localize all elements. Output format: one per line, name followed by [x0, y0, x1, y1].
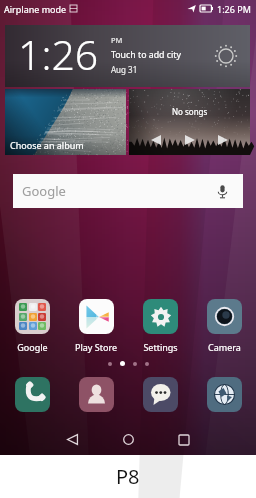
- button[interactable]: Settings: [128, 299, 192, 353]
- button[interactable]: Choose an album: [5, 89, 126, 155]
- staticText: P8: [116, 463, 140, 490]
- button[interactable]: Phone: [15, 377, 50, 412]
- button[interactable]: No songs: [129, 89, 250, 155]
- staticText: 1:26 PM: [217, 3, 251, 15]
- button[interactable]: Messages: [143, 377, 178, 412]
- staticText: No songs: [172, 106, 208, 117]
- staticText: Play Store: [75, 341, 117, 353]
- button[interactable]: Camera: [192, 299, 256, 353]
- staticText: Choose an album: [10, 139, 84, 151]
- button[interactable]: Google: [0, 299, 64, 353]
- button[interactable]: 1:26: [5, 25, 250, 87]
- button[interactable]: Home: [112, 424, 144, 455]
- staticText: Settings: [143, 341, 178, 353]
- button[interactable]: Browser: [207, 377, 242, 412]
- staticText: Camera: [208, 341, 241, 353]
- button[interactable]: Play Store: [64, 299, 128, 353]
- button[interactable]: Play: [183, 133, 197, 147]
- button[interactable]: Recent apps: [168, 424, 200, 455]
- button[interactable]: Contacts: [79, 377, 114, 412]
- staticText: Google: [22, 182, 66, 200]
- staticText: Aug 31: [111, 64, 138, 75]
- button[interactable]: Previous: [149, 133, 163, 147]
- button[interactable]: Google: [13, 174, 243, 208]
- staticText: Google: [17, 341, 48, 353]
- staticText: Airplane mode: [4, 3, 67, 15]
- staticText: PM: [111, 35, 123, 45]
- button[interactable]: Next: [216, 133, 230, 147]
- staticText: Touch to add city: [111, 49, 181, 61]
- button[interactable]: Back: [56, 424, 88, 455]
- staticText: 1:26: [18, 26, 99, 82]
- button[interactable]: Voice search: [213, 182, 231, 200]
